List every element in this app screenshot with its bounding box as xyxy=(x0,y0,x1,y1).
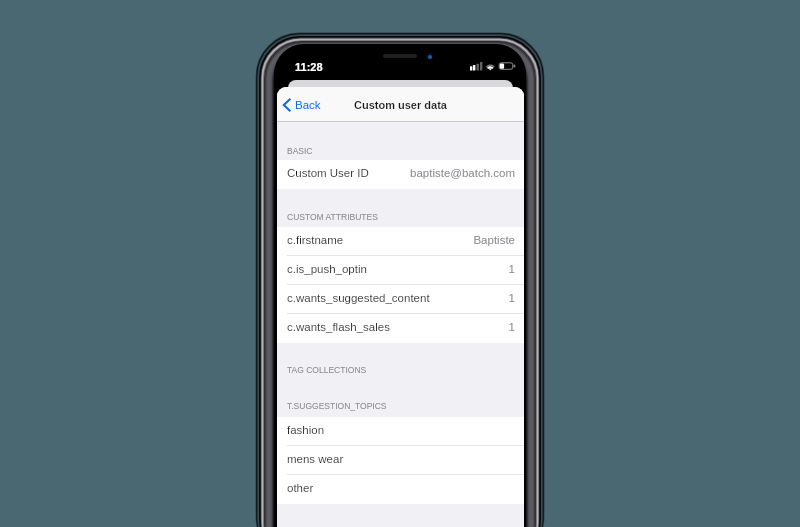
button[interactable]: Back xyxy=(280,92,324,118)
staticText: 1 xyxy=(508,263,515,276)
staticText: Custom User ID xyxy=(287,167,369,180)
staticText: fashion xyxy=(287,424,325,437)
staticText: Baptiste xyxy=(473,234,515,247)
button[interactable]: fashion xyxy=(277,417,524,446)
staticText: mens wear xyxy=(287,453,344,466)
button[interactable]: Custom User ID xyxy=(277,160,524,189)
staticText: Back xyxy=(295,99,321,112)
staticText: CUSTOM ATTRIBUTES xyxy=(287,212,378,221)
button[interactable]: c.wants_suggested_content xyxy=(277,285,524,314)
button[interactable]: c.is_push_optin xyxy=(277,256,524,285)
staticText: 1 xyxy=(508,321,515,334)
staticText: 1 xyxy=(508,292,515,305)
staticText: c.firstname xyxy=(287,234,344,247)
button[interactable]: other xyxy=(277,475,524,504)
button[interactable]: mens wear xyxy=(277,446,524,475)
staticText: BASIC xyxy=(287,146,313,155)
staticText: baptiste@batch.com xyxy=(409,167,515,180)
staticText: c.is_push_optin xyxy=(287,263,367,276)
button[interactable]: c.wants_flash_sales xyxy=(277,314,524,343)
staticText: other xyxy=(287,482,314,495)
other: Signal, Wi-Fi and battery status xyxy=(469,61,517,72)
staticText: T.SUGGESTION_TOPICS xyxy=(287,401,387,410)
staticText: c.wants_suggested_content xyxy=(287,292,430,305)
staticText: Custom user data xyxy=(354,99,447,111)
staticText: 11:28 xyxy=(295,61,323,73)
staticText: c.wants_flash_sales xyxy=(287,321,390,334)
staticText: TAG COLLECTIONS xyxy=(287,365,367,374)
button[interactable]: c.firstname xyxy=(277,227,524,256)
